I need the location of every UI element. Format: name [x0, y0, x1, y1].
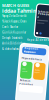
staticText: Skorlar: [21, 71, 27, 73]
staticText: MATCH GUESS: [2, 3, 29, 8]
staticText: Kupon: [35, 71, 40, 73]
staticText: Yapay Zeka Destekli: [2, 14, 27, 18]
staticText: Hizmetlerimiz: [20, 57, 40, 61]
staticText: Anlık Bildirimler: [2, 42, 25, 45]
staticText: Tahmin Paketleri: [20, 79, 34, 86]
staticText: Detaylı İstatistik: [2, 36, 22, 40]
staticText: Yüksek Kazanç Oranı: [2, 20, 27, 23]
staticText: Bugünün Kuponu: [22, 47, 36, 54]
staticText: iddaa Tahminleri: [2, 7, 45, 14]
staticText: Canlı Skorlar: [2, 25, 18, 29]
staticText: Günlük Kuponlar: [2, 31, 26, 34]
staticText: Hepsi AI destekli: [26, 38, 49, 42]
staticText: Tahmin: [37, 10, 48, 14]
staticText: Paketleri: [37, 12, 49, 19]
staticText: & daha fazlası...: [2, 47, 22, 51]
staticText: Günlük: [35, 69, 40, 70]
staticText: Canlı: [21, 69, 24, 70]
